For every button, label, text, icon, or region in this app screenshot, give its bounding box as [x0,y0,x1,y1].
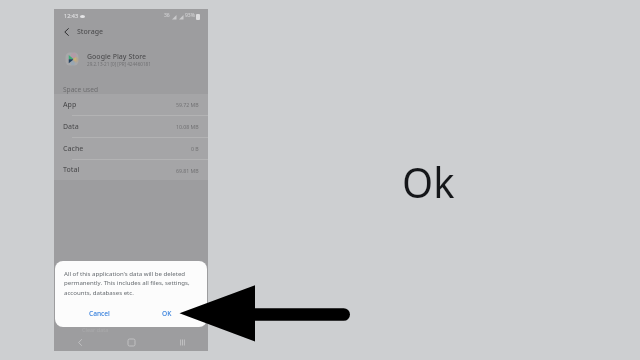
button[interactable]: Total [54,160,208,180]
staticText: 59.72 MB [176,101,199,108]
staticText: Ok [402,153,455,210]
staticText: 0 B [191,145,199,152]
staticText: App [63,100,77,110]
button[interactable]: Recent apps [157,333,208,351]
staticText: Cache [63,144,84,154]
staticText: Clear data [82,326,109,333]
other: Pointer arrow [180,285,350,342]
staticText: All of this application's data will be d… [64,269,198,297]
staticText: Total [63,165,80,175]
staticText: Cancel [89,309,110,318]
staticText: 12:43 [64,12,79,19]
staticText: Space used [63,85,98,94]
staticText: 29.2.13-21 [0] [PR] 424460181 [87,61,151,67]
staticText: 93% [185,12,195,19]
staticText: 69.81 MB [176,167,199,174]
staticText: Storage [77,27,103,37]
button[interactable]: Cache [54,138,208,159]
staticText: 10.08 MB [176,123,199,130]
button[interactable]: Back [54,23,208,41]
button[interactable]: App [54,94,208,115]
button[interactable]: Home [106,333,157,351]
staticText: Google Play Store [87,52,147,62]
staticText: 36 [164,12,170,19]
button[interactable]: Data [54,116,208,137]
button[interactable]: OK [158,305,176,322]
staticText: Data [63,122,79,132]
button[interactable]: Cancel [85,305,114,322]
other: Back [64,28,69,36]
staticText: OK [162,309,172,318]
